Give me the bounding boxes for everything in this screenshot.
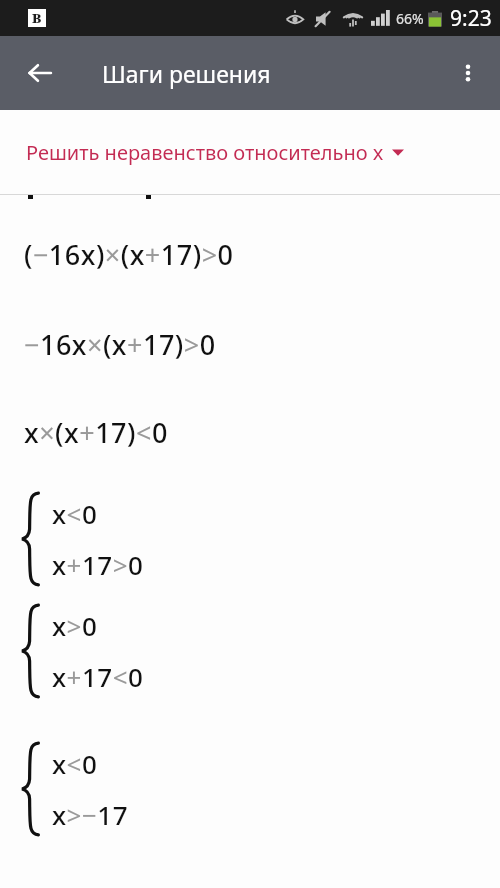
staticText: x>0 xyxy=(52,608,98,643)
button[interactable]: Решить неравенство относительно x xyxy=(0,110,500,194)
staticText: x<0 xyxy=(52,746,98,781)
button[interactable]: Назад xyxy=(16,49,64,97)
staticText: x+17>0 xyxy=(52,547,144,582)
staticText: 66% xyxy=(396,9,424,28)
staticText: (−16x)×(x+17)>0 xyxy=(24,236,234,273)
staticText: 9:23 xyxy=(450,4,492,33)
staticText: Шаги решения xyxy=(102,58,271,89)
button[interactable]: x×(x+17)<0 xyxy=(0,389,500,475)
button[interactable]: (−16x)×(x+17)>0 xyxy=(0,209,500,299)
staticText: Решить неравенство относительно x xyxy=(26,139,384,166)
button[interactable]: −16x×(x+17)>0 xyxy=(0,299,500,389)
staticText: x<0 xyxy=(52,496,98,531)
staticText: x×(x+17)<0 xyxy=(24,414,168,451)
staticText: −16x×(x+17)>0 xyxy=(24,326,216,363)
staticText: B xyxy=(32,9,42,27)
button[interactable]: Ещё xyxy=(444,49,492,97)
staticText: x>−17 xyxy=(52,797,129,832)
button[interactable]: x>0 xyxy=(0,595,500,707)
button[interactable]: x<0 xyxy=(0,483,500,595)
button[interactable]: x<0 xyxy=(0,733,500,845)
staticText: x+17<0 xyxy=(52,659,144,694)
